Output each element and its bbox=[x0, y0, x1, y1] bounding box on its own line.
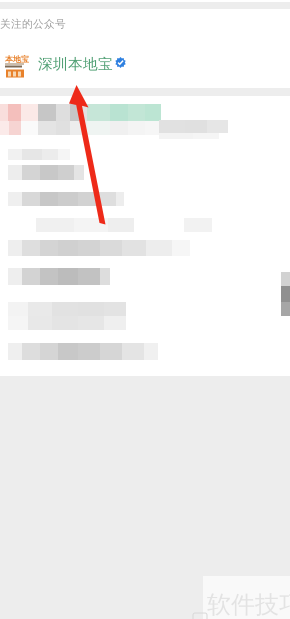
staticText: 本地宝 bbox=[5, 54, 29, 64]
staticText: 深圳本地宝 bbox=[38, 55, 113, 73]
button[interactable]: 关注的公众号 bbox=[0, 9, 290, 39]
staticText: 关注的公众号 bbox=[0, 17, 66, 30]
staticText: 软件技巧 bbox=[207, 590, 290, 619]
button[interactable]: 本地宝 bbox=[0, 39, 290, 88]
